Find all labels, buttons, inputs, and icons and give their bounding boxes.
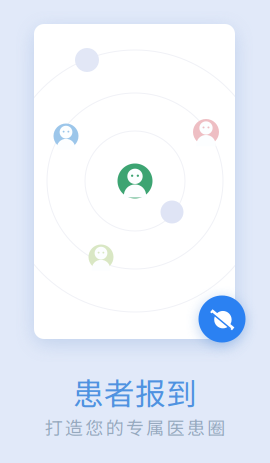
staticText: 患者报到 — [73, 370, 197, 414]
staticText: 打造您的专属医患圈 — [45, 414, 225, 440]
button[interactable]: Explore — [198, 295, 245, 342]
